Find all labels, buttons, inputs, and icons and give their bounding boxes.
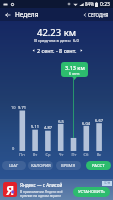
staticText: КАЛОРИЯ xyxy=(31,163,51,169)
button[interactable]: РАССТ xyxy=(86,161,111,170)
button[interactable]: Close ad xyxy=(102,181,112,186)
button[interactable]: ВРЕМЯ xyxy=(56,161,81,170)
staticText: 9.71 xyxy=(16,105,28,110)
staticText: Вт xyxy=(29,152,41,157)
staticText: Чт xyxy=(55,152,67,157)
button[interactable]: СЕГОДНЯ xyxy=(80,10,113,20)
button[interactable]: ШАГ xyxy=(2,161,26,170)
staticText: 3.13 км xyxy=(65,64,85,71)
staticText: 6.5 xyxy=(55,119,67,124)
staticText: Ср xyxy=(42,152,54,157)
staticText: Я xyxy=(6,182,15,197)
staticText: ⓘ✕ xyxy=(104,181,111,186)
staticText: Пт xyxy=(68,152,80,157)
button[interactable]: КАЛОРИЯ xyxy=(28,161,53,170)
button[interactable]: 3.13 км xyxy=(61,62,88,77)
staticText: 42.23 км xyxy=(0,26,113,39)
button[interactable]: УСТАНОВИТЬ xyxy=(73,187,110,197)
staticText: 6.04 xyxy=(80,121,92,126)
button[interactable]: Previous week xyxy=(29,46,37,54)
staticText: 0:23 xyxy=(100,1,110,8)
staticText: Сб xyxy=(80,152,92,157)
staticText: Вс xyxy=(93,152,105,157)
staticText: 84% xyxy=(85,1,94,7)
staticText: УСТАНОВИТЬ xyxy=(78,189,105,195)
staticText: ВРЕМЯ xyxy=(61,163,76,169)
staticText: СЕГОДНЯ xyxy=(88,12,109,18)
staticText: 5.11 xyxy=(29,124,41,129)
staticText: Неделя xyxy=(15,10,39,19)
staticText: 0 xyxy=(12,146,15,151)
staticText: Яндекс — с Алисой xyxy=(20,182,63,188)
staticText: 2 сент. - 8 сент. xyxy=(37,47,77,54)
button[interactable]: Yandex xyxy=(3,182,17,197)
staticText: РАССТ xyxy=(92,163,105,169)
button[interactable]: Back xyxy=(0,8,15,21)
staticText: 10 xyxy=(11,105,16,110)
staticText: 6.67 xyxy=(93,118,105,123)
staticText: 4.87 xyxy=(42,125,54,130)
staticText: 6 сент. xyxy=(69,71,81,76)
staticText: В приложении Яндекс всё нужное на одном … xyxy=(20,189,63,198)
staticText: В среднем в день: 6.0 xyxy=(0,38,113,44)
staticText: ШАГ xyxy=(9,163,19,169)
button[interactable]: Next week xyxy=(77,46,85,54)
staticText: Пн xyxy=(16,152,28,157)
